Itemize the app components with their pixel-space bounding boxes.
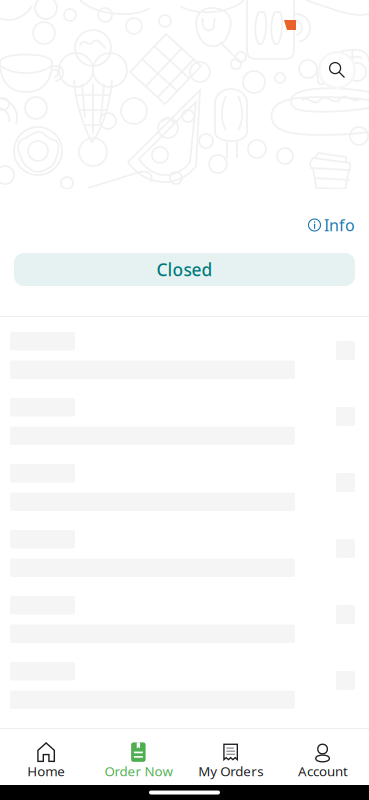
button[interactable]: Home [0, 729, 92, 785]
button[interactable]: Search [318, 51, 356, 89]
button[interactable]: Info [308, 214, 369, 236]
button[interactable]: Order Now [92, 729, 184, 785]
button[interactable]: My Orders [184, 729, 277, 785]
staticText: Info [324, 214, 355, 236]
staticText: Account [298, 762, 348, 780]
staticText: My Orders [198, 762, 263, 780]
staticText: Order Now [104, 762, 172, 780]
button[interactable]: Account [277, 729, 369, 785]
staticText: Closed [156, 258, 212, 281]
staticText: Home [27, 762, 65, 780]
